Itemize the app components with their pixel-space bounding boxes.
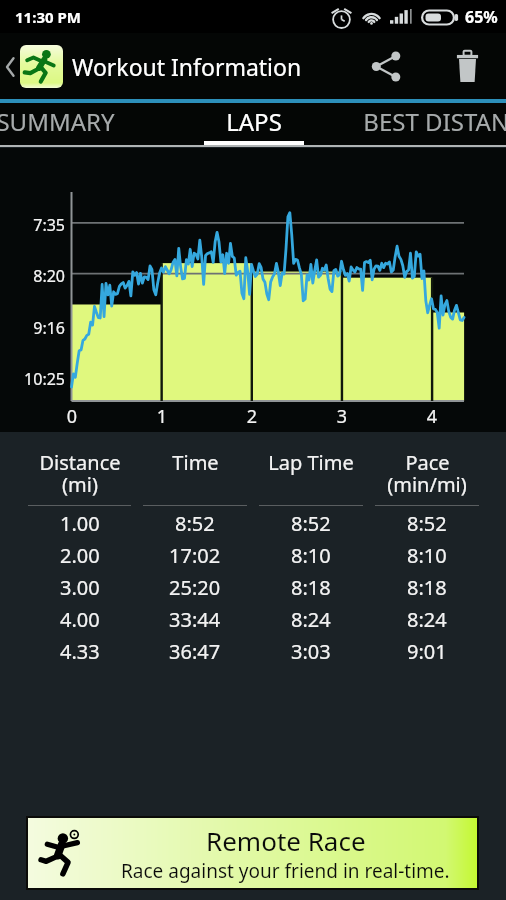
staticText: (min/mi) bbox=[387, 471, 467, 498]
staticText: Time bbox=[172, 449, 219, 476]
button[interactable]: BEST DISTANCE bbox=[352, 103, 506, 145]
staticText: 8:10 bbox=[407, 542, 447, 569]
button[interactable]: LAPS bbox=[155, 103, 352, 145]
staticText: LAPS bbox=[226, 105, 282, 138]
staticText: 1.00 bbox=[60, 510, 100, 537]
staticText: 4.00 bbox=[60, 606, 100, 633]
staticText: 36:47 bbox=[169, 638, 221, 665]
staticText: 9:16 bbox=[13, 317, 65, 339]
staticText: 3.00 bbox=[60, 574, 100, 601]
button[interactable]: SUMMARY bbox=[0, 103, 154, 145]
staticText: 11:30 PM bbox=[15, 7, 81, 27]
staticText: 8:10 bbox=[291, 542, 331, 569]
staticText: Lap Time bbox=[268, 449, 354, 476]
staticText: 3 bbox=[329, 404, 355, 429]
button[interactable]: Navigate up bbox=[0, 35, 67, 98]
button[interactable]: Delete bbox=[439, 38, 495, 94]
staticText: Race against your friend in real-time. bbox=[121, 858, 450, 884]
staticText: 65% bbox=[465, 6, 498, 28]
staticText: 8:24 bbox=[291, 606, 331, 633]
staticText: 8:24 bbox=[407, 606, 447, 633]
staticText: 8:52 bbox=[407, 510, 447, 537]
staticText: 4 bbox=[419, 404, 445, 429]
staticText: 2.00 bbox=[60, 542, 100, 569]
staticText: 25:20 bbox=[169, 574, 221, 601]
staticText: 2 bbox=[239, 404, 265, 429]
staticText: SUMMARY bbox=[0, 105, 115, 138]
staticText: 3:03 bbox=[291, 638, 331, 665]
staticText: 8:52 bbox=[291, 510, 331, 537]
button[interactable]: Share bbox=[358, 38, 414, 94]
staticText: Remote Race bbox=[206, 823, 366, 858]
staticText: 10:25 bbox=[13, 368, 65, 390]
staticText: 8:18 bbox=[291, 574, 331, 601]
staticText: (mi) bbox=[62, 471, 98, 498]
staticText: 4.33 bbox=[60, 638, 100, 665]
staticText: Pace bbox=[405, 449, 450, 476]
staticText: 7:35 bbox=[13, 214, 65, 236]
staticText: 9:01 bbox=[407, 638, 447, 665]
staticText: 8:20 bbox=[13, 265, 65, 287]
staticText: 8:18 bbox=[407, 574, 447, 601]
staticText: Workout Information bbox=[72, 51, 302, 82]
staticText: BEST DISTANCE bbox=[363, 105, 506, 138]
staticText: 17:02 bbox=[169, 542, 221, 569]
button[interactable]: Remote Race bbox=[28, 818, 477, 888]
staticText: 0 bbox=[59, 404, 85, 429]
staticText: 33:44 bbox=[169, 606, 221, 633]
staticText: 8:52 bbox=[175, 510, 215, 537]
staticText: 1 bbox=[149, 404, 175, 429]
staticText: Distance bbox=[39, 449, 121, 476]
